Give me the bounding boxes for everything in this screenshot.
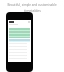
staticText: Beautiful, simple and customisable bbox=[7, 3, 57, 7]
button[interactable]: Profile bbox=[6, 12, 33, 72]
staticText: timetables bbox=[24, 8, 41, 13]
